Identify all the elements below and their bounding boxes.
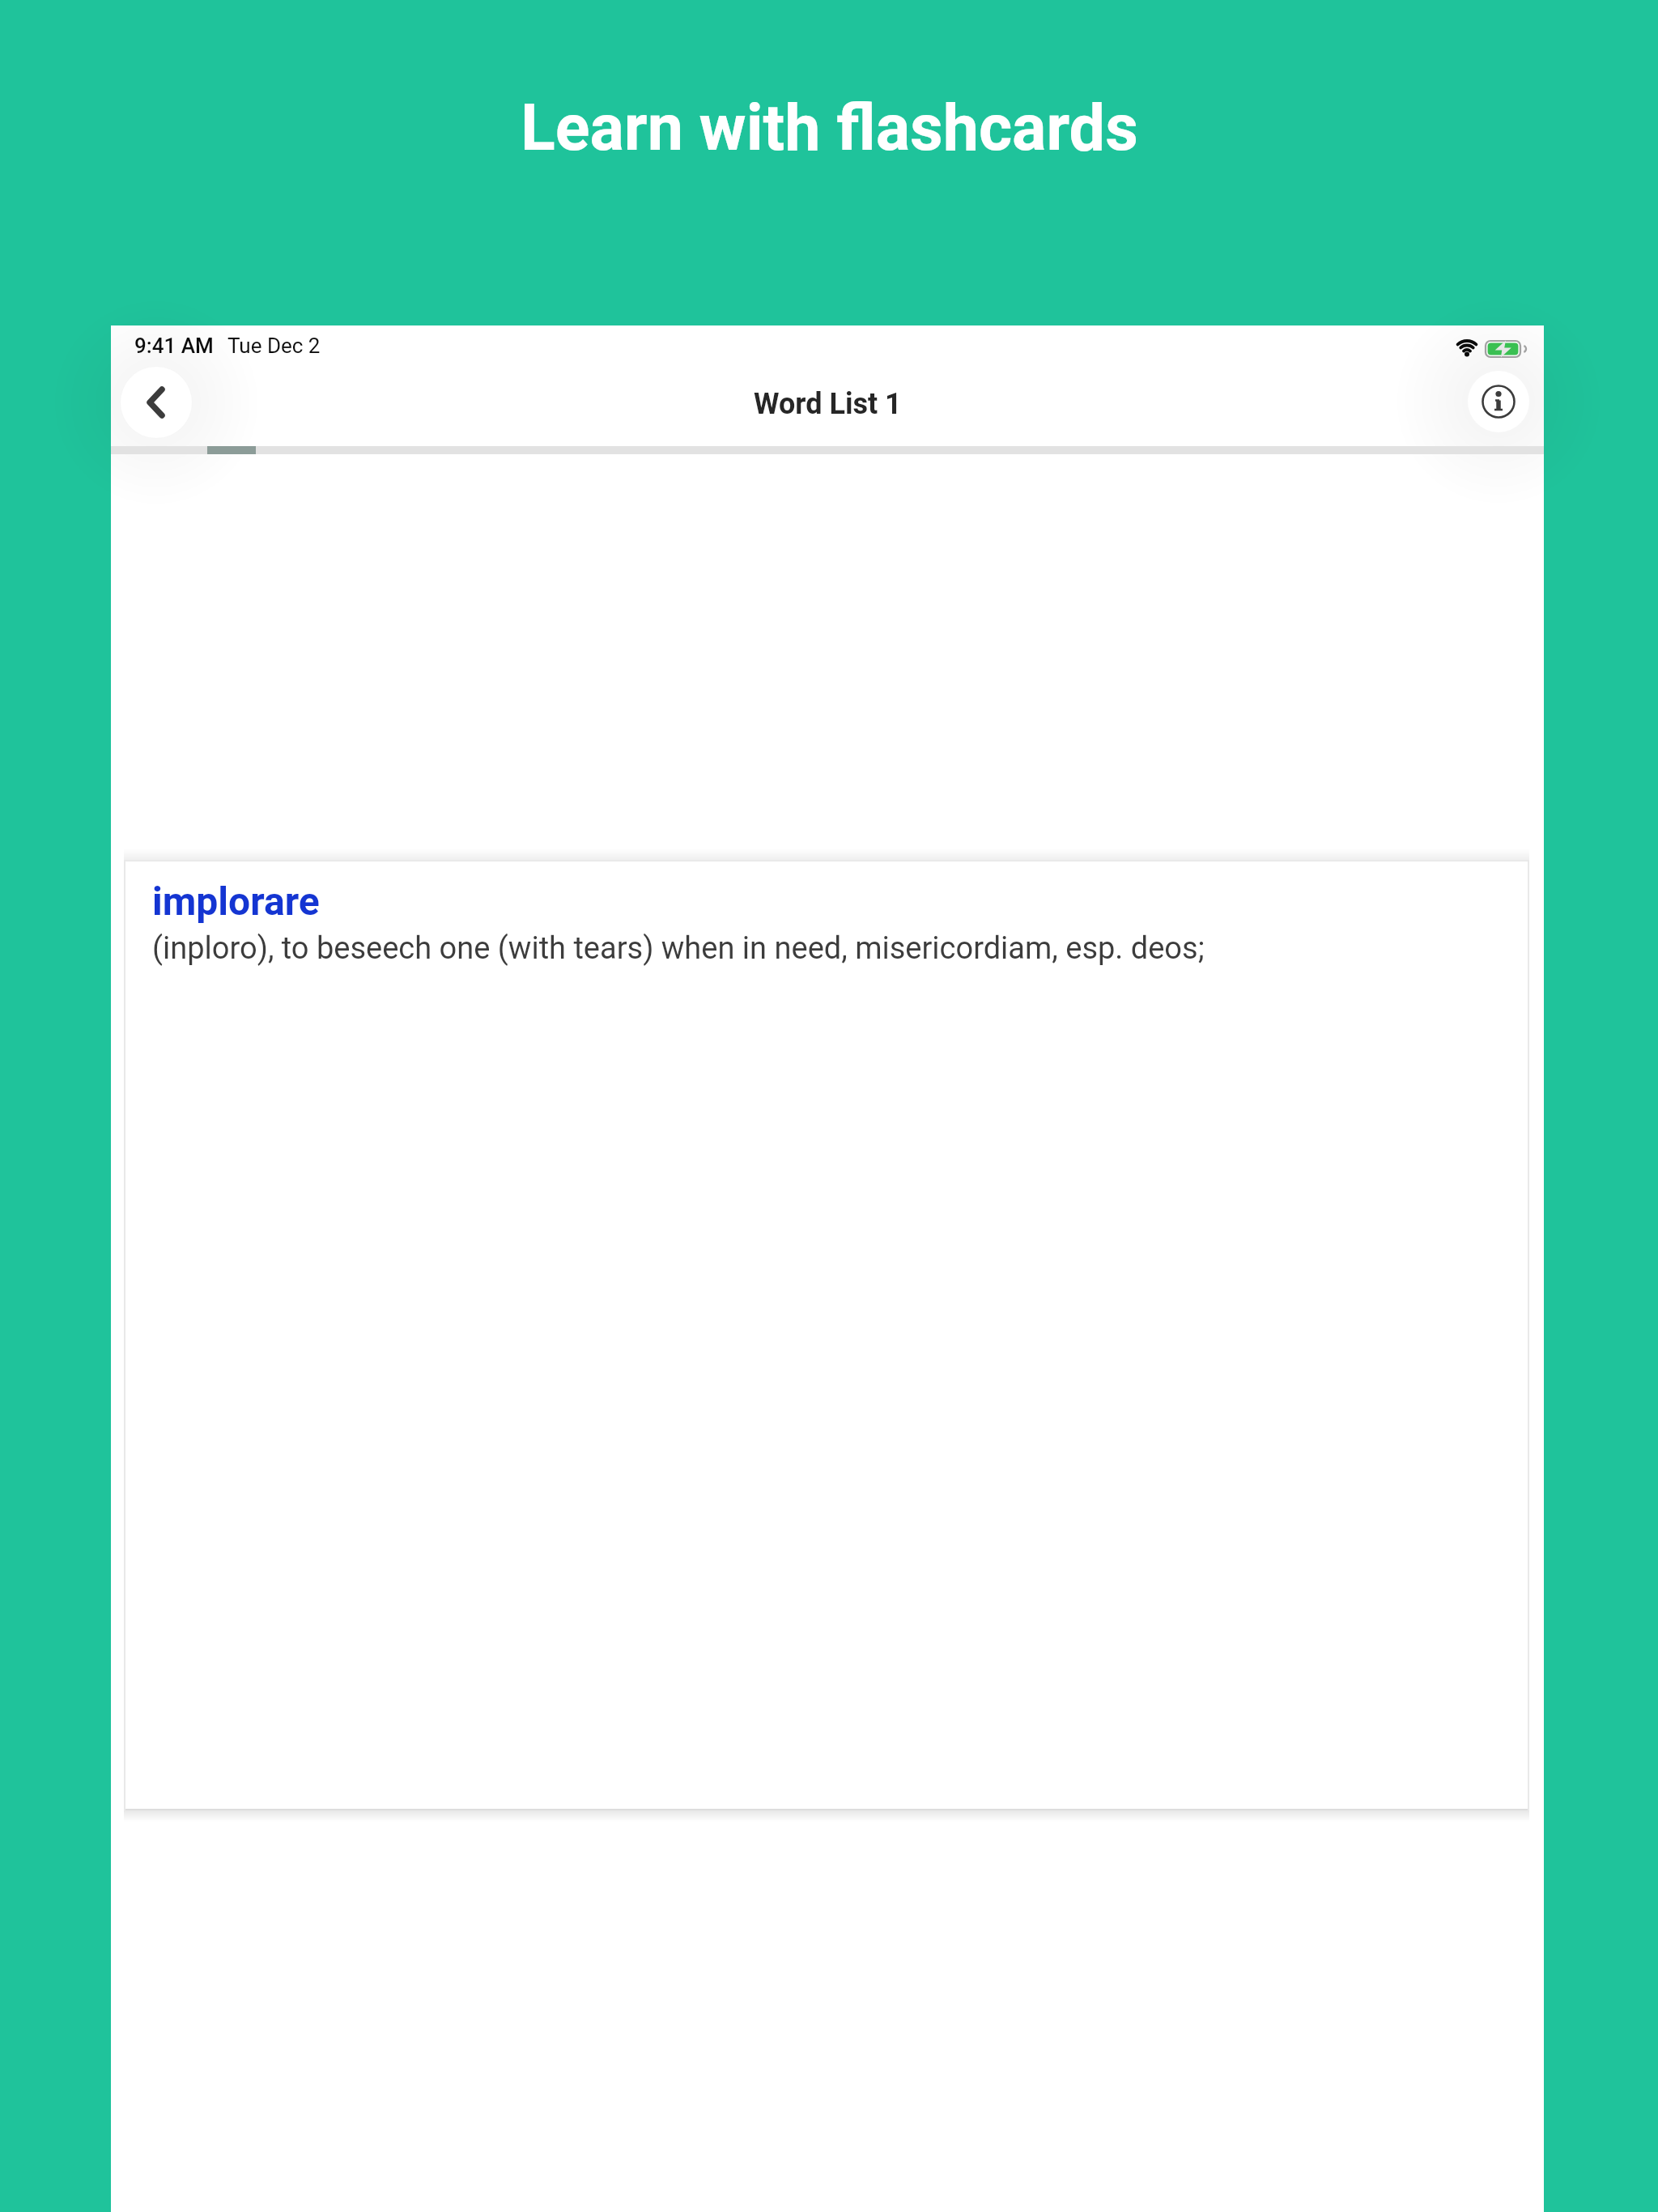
- staticText: (inploro), to beseech one (with tears) w…: [152, 930, 1205, 967]
- staticText: Learn with flashcards: [521, 91, 1138, 166]
- staticText: Tue Dec 2: [227, 334, 321, 358]
- button[interactable]: [121, 367, 192, 438]
- staticText: Word List 1: [754, 387, 902, 421]
- button[interactable]: implorare: [124, 860, 1529, 1812]
- button[interactable]: [1468, 371, 1529, 432]
- staticText: 9:41 AM: [134, 334, 214, 358]
- staticText: implorare: [152, 878, 320, 924]
